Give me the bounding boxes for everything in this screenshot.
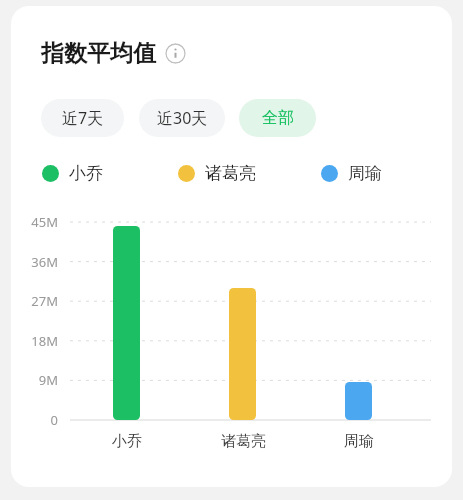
staticText: 18M: [31, 332, 58, 350]
staticText: 36M: [31, 253, 58, 271]
staticText: 周瑜: [348, 163, 382, 184]
button[interactable]: 近30天: [139, 99, 225, 137]
staticText: 诸葛亮: [221, 432, 266, 451]
staticText: 诸葛亮: [205, 163, 256, 184]
staticText: 全部: [262, 108, 294, 128]
staticText: 小乔: [112, 432, 142, 451]
button[interactable]: 周瑜: [321, 163, 382, 184]
staticText: 近7天: [62, 107, 104, 129]
staticText: 指数平均值: [41, 39, 156, 68]
button[interactable]: 全部: [239, 99, 316, 137]
button[interactable]: 小乔: [42, 163, 103, 184]
staticText: 45M: [31, 213, 58, 231]
button[interactable]: 近7天: [41, 99, 124, 137]
button[interactable]: 诸葛亮: [178, 163, 256, 184]
staticText: 小乔: [69, 163, 103, 184]
staticText: 9M: [38, 371, 58, 389]
button[interactable]: More information: [165, 43, 186, 64]
staticText: 周瑜: [344, 432, 374, 451]
staticText: 27M: [31, 292, 58, 310]
staticText: 0: [50, 411, 58, 429]
staticText: 近30天: [157, 107, 208, 129]
